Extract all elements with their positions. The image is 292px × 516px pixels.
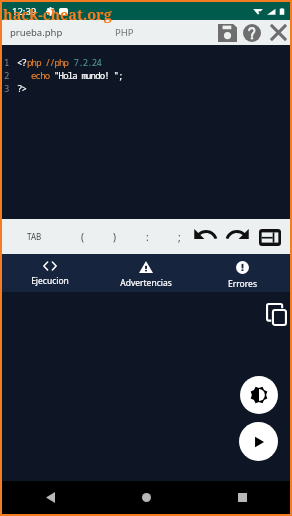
staticText: 1 xyxy=(4,56,10,68)
staticText: ?> xyxy=(17,82,27,94)
staticText: 2 xyxy=(4,69,10,81)
button[interactable]: ) xyxy=(98,219,130,254)
button[interactable]: Help xyxy=(239,20,264,45)
staticText: ; xyxy=(178,230,181,244)
staticText: 3 xyxy=(4,82,10,94)
staticText: hack-cheat.org xyxy=(3,4,112,24)
button[interactable]: : xyxy=(131,219,163,254)
button[interactable]: Ejecucion xyxy=(2,254,98,292)
staticText: 7.2.24 xyxy=(69,56,101,68)
button[interactable]: Recents xyxy=(194,481,290,514)
button[interactable]: ( xyxy=(66,219,98,254)
button[interactable]: Home xyxy=(98,481,194,514)
button[interactable]: Keyboard xyxy=(256,223,284,251)
button[interactable]: Back xyxy=(2,481,98,514)
staticText: "Hola mundo! "; xyxy=(54,69,123,81)
button[interactable]: Brightness xyxy=(240,376,278,414)
button[interactable]: Errores xyxy=(194,254,290,292)
button[interactable]: Undo xyxy=(192,223,219,250)
button[interactable]: Run xyxy=(239,422,278,461)
staticText: Ejecucion xyxy=(31,275,69,287)
staticText: echo xyxy=(31,69,54,81)
staticText: prueba.php xyxy=(10,26,63,39)
staticText: php //php xyxy=(27,56,69,68)
button[interactable]: TAB xyxy=(18,219,51,254)
staticText: Errores xyxy=(228,278,257,290)
button[interactable]: ; xyxy=(163,219,195,254)
button[interactable]: Redo xyxy=(224,223,251,250)
button[interactable]: Save xyxy=(215,21,239,45)
staticText: TAB xyxy=(27,231,42,242)
button[interactable]: Advertencias xyxy=(98,254,194,292)
button[interactable]: Copy xyxy=(262,300,290,328)
staticText: ( xyxy=(81,230,84,244)
staticText: PHP xyxy=(115,26,134,39)
staticText: ) xyxy=(113,230,116,244)
staticText: 12:39 xyxy=(12,5,37,18)
staticText: Advertencias xyxy=(120,277,172,289)
staticText: <? xyxy=(17,56,27,68)
button[interactable]: Close xyxy=(264,20,292,45)
staticText: : xyxy=(146,230,149,244)
